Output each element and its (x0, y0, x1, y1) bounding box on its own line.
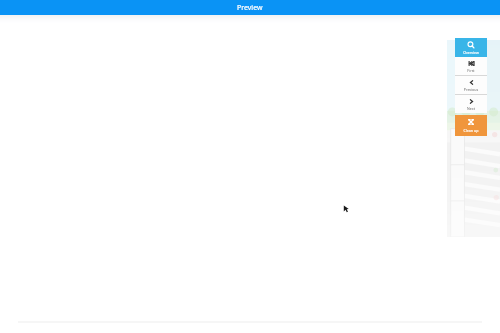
button[interactable]: Clean up (455, 115, 487, 136)
staticText: Overview (455, 50, 487, 55)
button[interactable]: Previous (455, 76, 487, 94)
button[interactable]: First (455, 57, 487, 75)
button[interactable]: Overview (455, 38, 487, 57)
staticText: Clean up (455, 128, 487, 133)
staticText: Preview (237, 3, 263, 13)
staticText: Next (455, 106, 487, 111)
staticText: Previous (455, 87, 487, 92)
staticText: First (455, 68, 487, 73)
button[interactable]: Next (455, 95, 487, 113)
